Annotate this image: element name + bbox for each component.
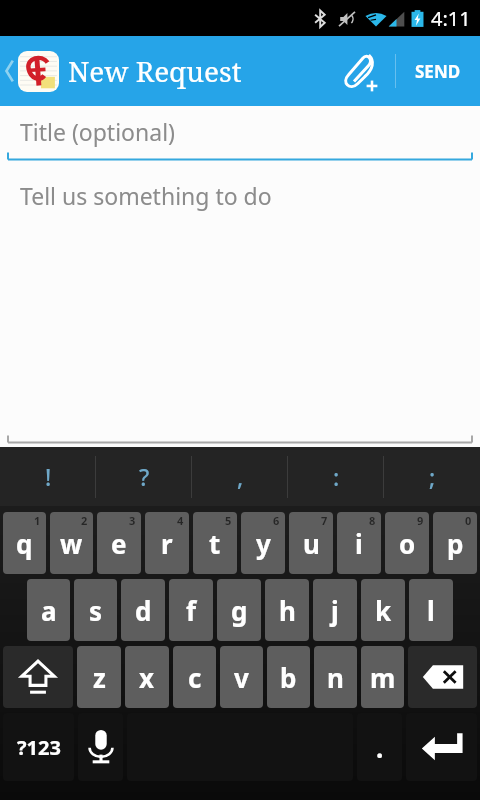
- button[interactable]: Title (optional): [0, 106, 480, 156]
- staticText: 8: [369, 513, 376, 528]
- button[interactable]: p: [433, 512, 477, 574]
- button[interactable]: ;: [384, 447, 480, 506]
- staticText: y: [256, 526, 271, 561]
- staticText: 7: [321, 513, 328, 528]
- button[interactable]: .: [357, 713, 402, 781]
- staticText: v: [234, 660, 249, 695]
- staticText: .: [376, 730, 384, 765]
- staticText: b: [280, 660, 297, 695]
- button[interactable]: ?: [96, 447, 192, 506]
- staticText: !: [45, 461, 52, 492]
- button[interactable]: Shift: [3, 646, 73, 708]
- staticText: 5: [225, 513, 232, 528]
- button[interactable]: r: [145, 512, 189, 574]
- staticText: SEND: [415, 60, 461, 83]
- staticText: Title (optional): [20, 116, 175, 147]
- button[interactable]: Tell us something to do: [0, 163, 480, 439]
- button[interactable]: l: [409, 579, 453, 641]
- staticText: 4:11: [431, 5, 471, 32]
- button[interactable]: e: [97, 512, 141, 574]
- staticText: 9: [417, 513, 424, 528]
- button[interactable]: j: [313, 579, 357, 641]
- button[interactable]: g: [217, 579, 261, 641]
- button[interactable]: Backspace: [408, 646, 477, 708]
- button[interactable]: Attach file: [325, 36, 395, 106]
- button[interactable]: o: [385, 512, 429, 574]
- staticText: n: [327, 660, 344, 695]
- staticText: :: [333, 461, 340, 492]
- staticText: h: [279, 593, 296, 628]
- button[interactable]: Navigate up: [0, 36, 59, 106]
- staticText: w: [60, 526, 83, 561]
- button[interactable]: n: [314, 646, 357, 708]
- staticText: Tell us something to do: [20, 180, 272, 211]
- staticText: d: [135, 593, 152, 628]
- button[interactable]: :: [288, 447, 384, 506]
- staticText: j: [331, 593, 339, 628]
- staticText: ,: [237, 461, 244, 492]
- staticText: m: [370, 660, 396, 695]
- staticText: New Request: [68, 52, 242, 90]
- staticText: r: [161, 526, 173, 561]
- staticText: 1: [34, 513, 41, 528]
- button[interactable]: c: [173, 646, 216, 708]
- button[interactable]: Voice input: [78, 713, 123, 781]
- button[interactable]: ,: [192, 447, 288, 506]
- button[interactable]: h: [265, 579, 309, 641]
- staticText: a: [41, 593, 57, 628]
- button[interactable]: v: [220, 646, 263, 708]
- button[interactable]: q: [3, 512, 46, 574]
- button[interactable]: Enter: [406, 713, 477, 781]
- button[interactable]: z: [77, 646, 121, 708]
- button[interactable]: i: [337, 512, 381, 574]
- staticText: o: [399, 526, 416, 561]
- staticText: g: [231, 593, 248, 628]
- button[interactable]: d: [121, 579, 165, 641]
- staticText: l: [427, 593, 435, 628]
- staticText: 4: [177, 513, 184, 528]
- staticText: 6: [273, 513, 280, 528]
- button[interactable]: w: [50, 512, 93, 574]
- staticText: p: [447, 526, 464, 561]
- staticText: u: [303, 526, 320, 561]
- button[interactable]: !: [0, 447, 96, 506]
- button[interactable]: y: [241, 512, 285, 574]
- staticText: 0: [465, 513, 472, 528]
- staticText: e: [111, 526, 127, 561]
- staticText: z: [93, 660, 106, 695]
- button[interactable]: m: [361, 646, 404, 708]
- staticText: s: [89, 593, 103, 628]
- button[interactable]: SEND: [396, 36, 480, 106]
- button[interactable]: k: [361, 579, 405, 641]
- button[interactable]: u: [289, 512, 333, 574]
- staticText: q: [16, 526, 33, 561]
- button[interactable]: ?123: [3, 713, 74, 781]
- button[interactable]: f: [169, 579, 213, 641]
- staticText: t: [209, 526, 221, 561]
- button[interactable]: b: [267, 646, 310, 708]
- staticText: x: [139, 660, 155, 695]
- staticText: ;: [429, 461, 436, 492]
- staticText: ?123: [17, 734, 61, 761]
- staticText: i: [355, 526, 363, 561]
- button[interactable]: x: [125, 646, 169, 708]
- staticText: 3: [129, 513, 136, 528]
- button[interactable]: t: [193, 512, 237, 574]
- staticText: f: [186, 593, 197, 628]
- staticText: 2: [81, 513, 88, 528]
- staticText: ?: [139, 461, 150, 492]
- staticText: c: [188, 660, 202, 695]
- staticText: k: [375, 593, 392, 628]
- button[interactable]: s: [74, 579, 117, 641]
- button[interactable]: a: [27, 579, 70, 641]
